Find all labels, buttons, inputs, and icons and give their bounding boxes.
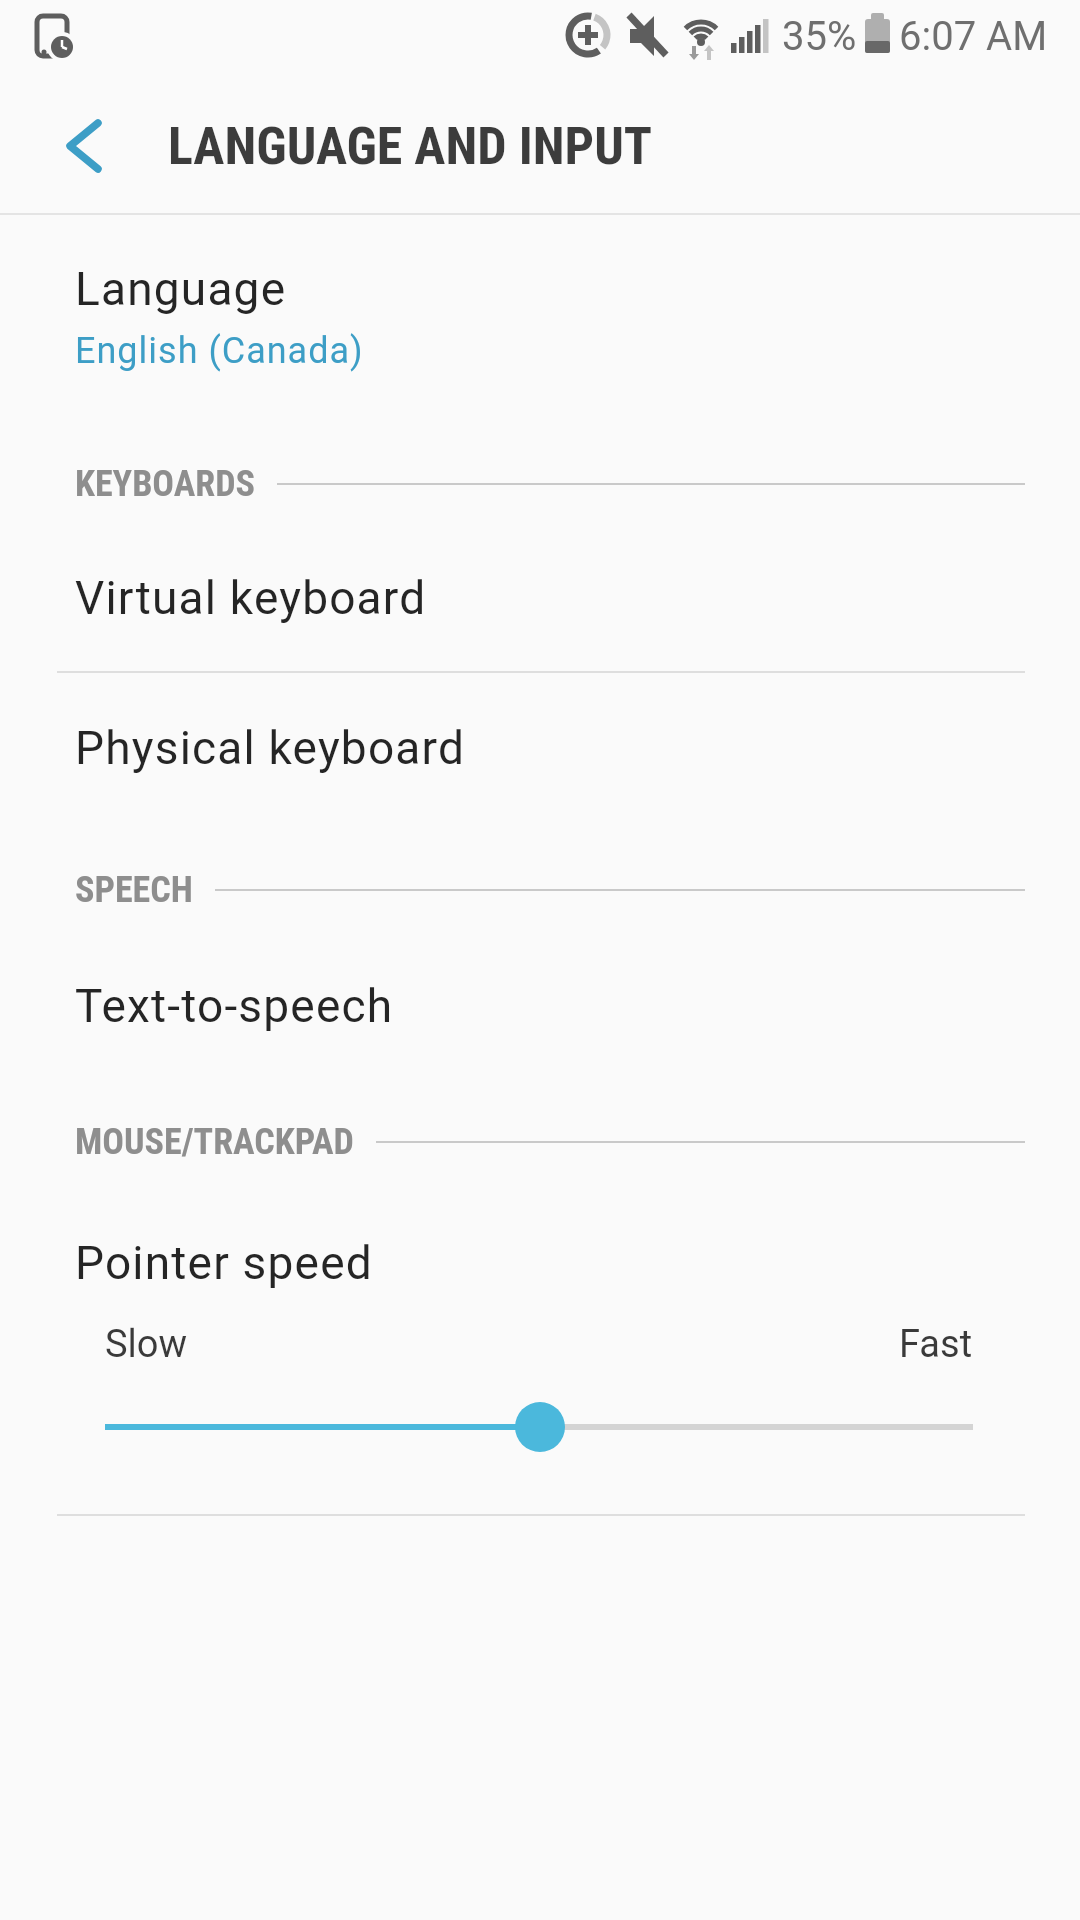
staticText: English (Canada) — [75, 330, 364, 372]
staticText: Virtual keyboard — [75, 571, 427, 625]
staticText: LANGUAGE AND INPUT — [168, 116, 653, 177]
staticText: Pointer speed — [75, 1236, 373, 1290]
staticText: SPEECH — [75, 869, 193, 911]
staticText: Slow — [105, 1322, 188, 1367]
button[interactable]: Language — [0, 235, 1080, 385]
button[interactable] — [515, 1402, 565, 1452]
staticText: Physical keyboard — [75, 721, 466, 775]
staticText: Fast — [899, 1322, 973, 1367]
staticText: Language — [75, 262, 287, 316]
staticText: Text-to-speech — [75, 979, 394, 1033]
staticText: 6:07 AM — [899, 13, 1048, 60]
staticText: MOUSE/TRACKPAD — [75, 1121, 354, 1163]
staticText: 35% — [782, 13, 857, 60]
button[interactable]: Virtual keyboard — [0, 528, 1080, 672]
button[interactable]: Text-to-speech — [0, 934, 1080, 1078]
button[interactable]: Physical keyboard — [0, 673, 1080, 819]
button[interactable] — [56, 118, 112, 174]
staticText: KEYBOARDS — [75, 463, 255, 505]
